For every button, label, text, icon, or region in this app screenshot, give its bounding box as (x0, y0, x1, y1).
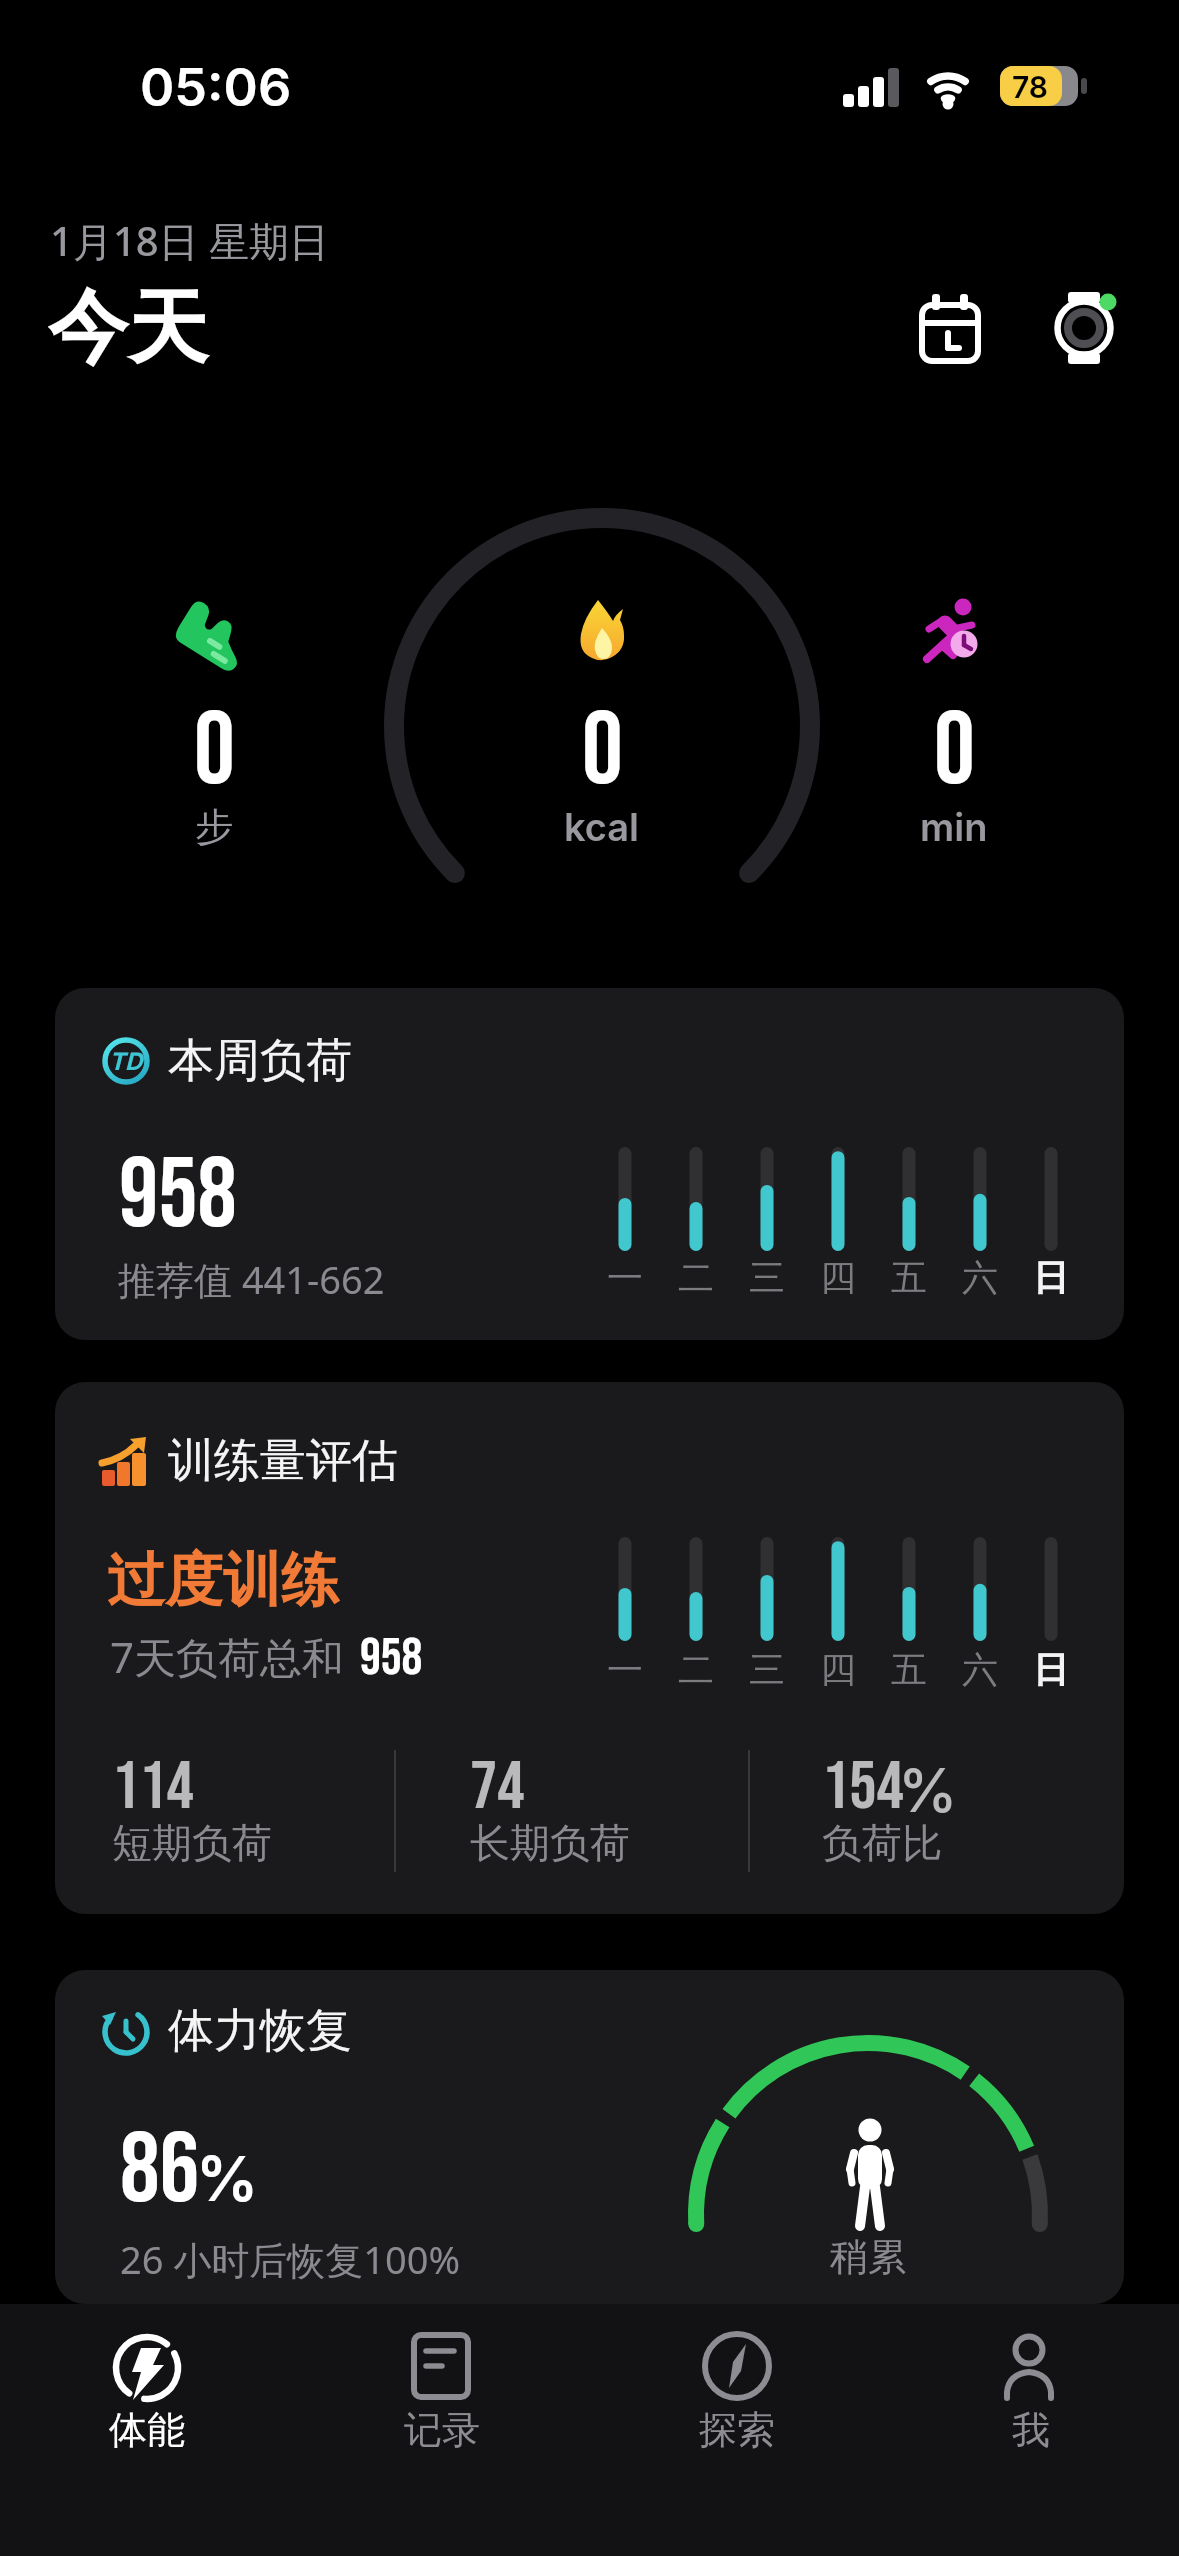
staticText: 05:06 (140, 56, 292, 119)
staticText: 体力恢复 (168, 2002, 352, 2060)
staticText: 78 (1012, 69, 1049, 105)
staticText: 长期负荷 (470, 1818, 630, 1868)
staticText: 一 (607, 1255, 643, 1300)
staticText: 四 (820, 1255, 856, 1300)
staticText: 二 (678, 1255, 714, 1300)
staticText: 稍累 (830, 2233, 906, 2281)
staticText: 负荷比 (822, 1818, 942, 1868)
staticText: 过度训练 (107, 1544, 339, 1617)
staticText: 0 (194, 691, 235, 813)
staticText: 训练量评估 (168, 1432, 398, 1490)
button[interactable] (55, 1970, 1124, 2304)
button[interactable] (942, 2310, 1122, 2460)
button[interactable] (352, 2310, 532, 2460)
button[interactable] (55, 1382, 1124, 1914)
staticText: 三 (749, 1255, 785, 1300)
staticText: 日 (1033, 1647, 1069, 1692)
staticText: 958 (119, 1138, 237, 1256)
staticText: 0 (582, 691, 623, 813)
button[interactable] (647, 2310, 827, 2460)
button[interactable] (57, 2310, 237, 2460)
staticText: 推荐值 441-662 (118, 1253, 385, 1305)
staticText: TD (109, 1047, 143, 1076)
staticText: 日 (1033, 1255, 1069, 1300)
staticText: 本周负荷 (168, 1032, 352, 1090)
button[interactable] (1040, 275, 1130, 380)
staticText: % (196, 2141, 259, 2216)
button[interactable] (55, 988, 1124, 1340)
staticText: % (898, 1754, 958, 1827)
staticText: 三 (749, 1647, 785, 1692)
staticText: 二 (678, 1647, 714, 1692)
staticText: 26 小时后恢复100% (120, 2233, 461, 2285)
staticText: 154 (822, 1747, 904, 1829)
staticText: 五 (891, 1255, 927, 1300)
staticText: 7天负荷总和 (110, 1628, 345, 1685)
staticText: 六 (962, 1255, 998, 1300)
staticText: kcal (564, 804, 640, 850)
staticText: 114 (112, 1747, 194, 1829)
staticText: 一 (607, 1647, 643, 1692)
staticText: 今天 (48, 278, 208, 379)
staticText: 记录 (404, 2406, 480, 2454)
staticText: 六 (962, 1647, 998, 1692)
staticText: 0 (934, 691, 975, 813)
staticText: 74 (470, 1747, 525, 1829)
button[interactable] (905, 275, 995, 380)
staticText: 我 (1012, 2406, 1050, 2454)
staticText: 步 (195, 803, 233, 851)
staticText: 体能 (109, 2406, 185, 2454)
staticText: 1月18日 星期日 (50, 213, 330, 268)
staticText: 短期负荷 (112, 1818, 272, 1868)
staticText: 86 (120, 2112, 200, 2231)
staticText: 四 (820, 1647, 856, 1692)
staticText: 958 (360, 1627, 423, 1689)
staticText: 五 (891, 1647, 927, 1692)
staticText: 探索 (699, 2406, 775, 2454)
staticText: min (920, 804, 988, 850)
